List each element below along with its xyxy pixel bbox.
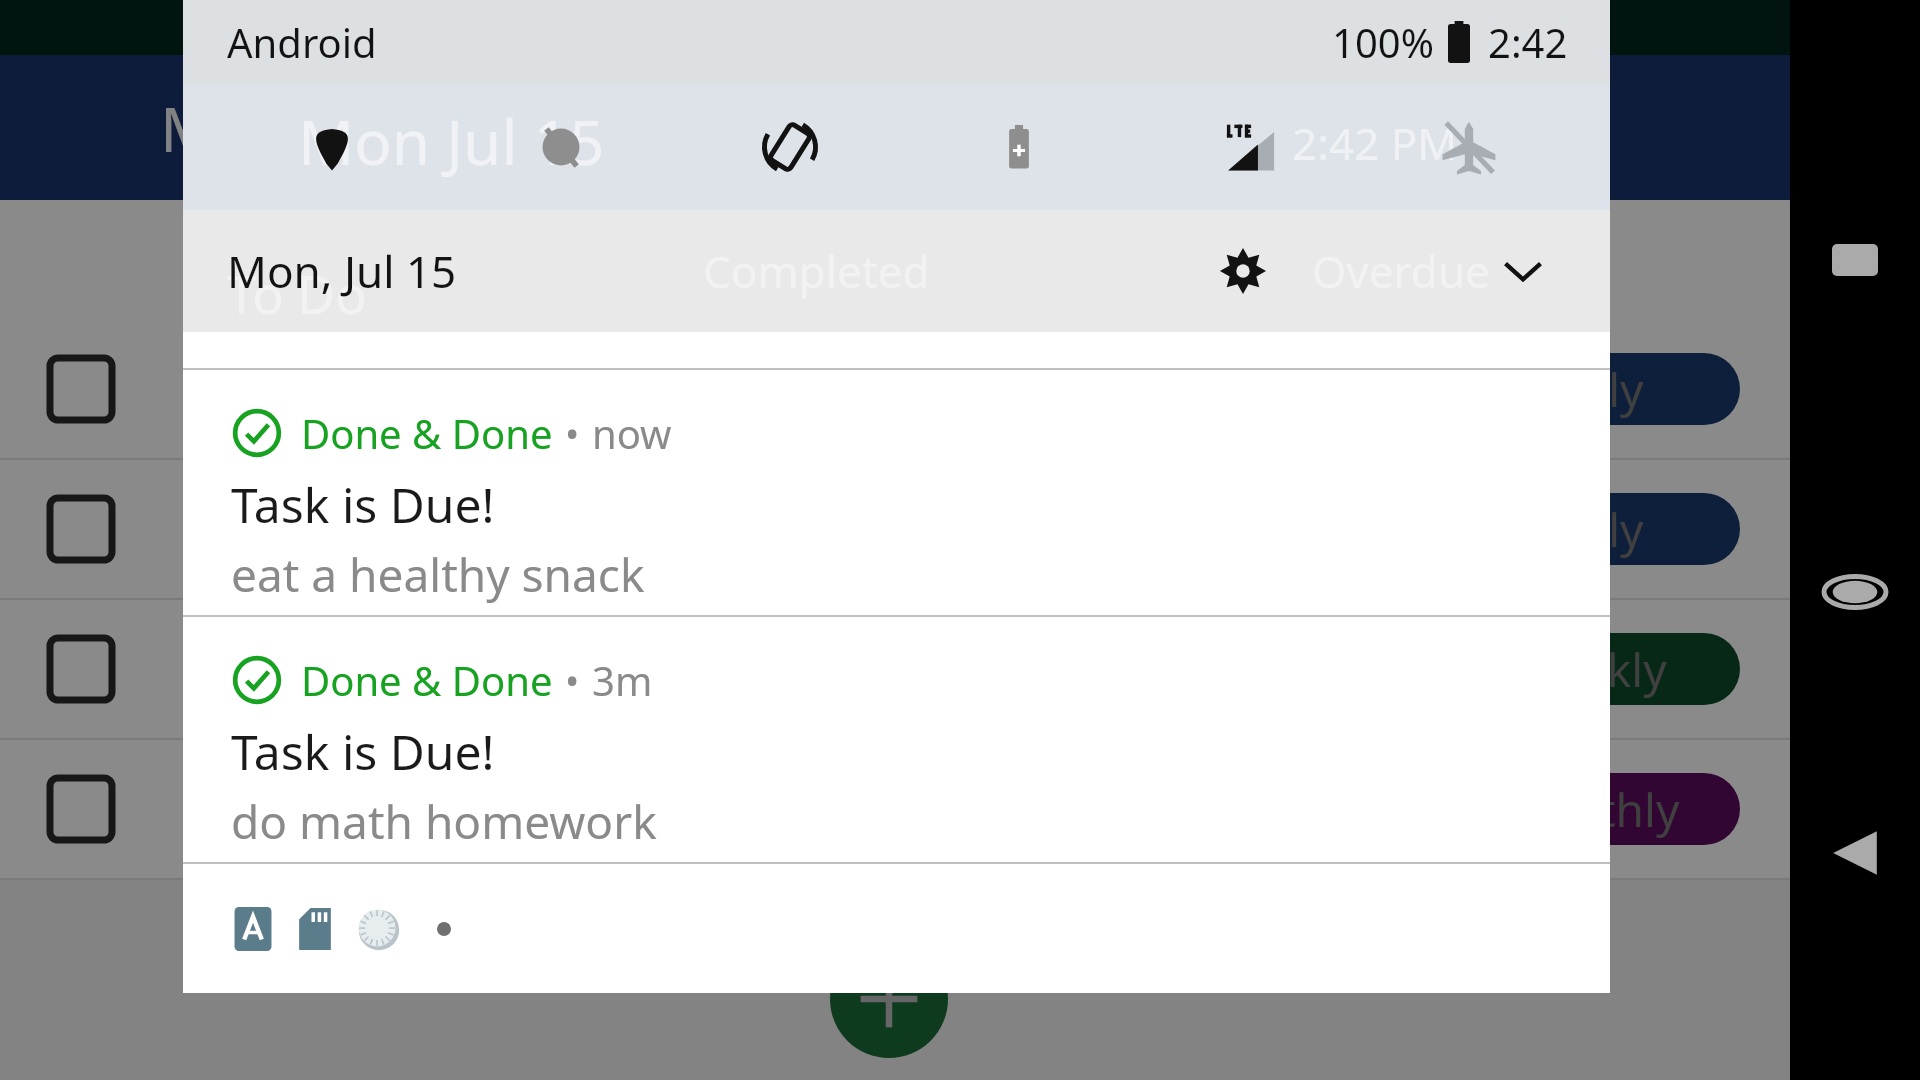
button[interactable]: Settings [1206,234,1280,308]
button[interactable]: Add task [830,940,948,1058]
staticText: do math homework [231,790,657,853]
staticText: Task is Due! [231,719,495,784]
button[interactable] [1362,84,1576,210]
staticText: now [592,406,672,460]
button[interactable]: Daily [0,320,1790,460]
staticText: Monthly [1501,778,1680,841]
staticText: Completed [703,241,930,301]
staticText: Done & Done [301,653,553,707]
staticText: 2:42 PM [1292,113,1458,173]
staticText: 2:42 [1488,15,1568,69]
staticText: Task is Due! [231,472,495,537]
staticText: To Do [30,225,590,296]
button[interactable]: Home [1807,544,1903,640]
button[interactable]: Back [1810,808,1900,898]
staticText: Android [227,15,377,69]
button[interactable] [675,84,904,210]
button[interactable]: Daily [0,460,1790,600]
button[interactable] [1133,84,1362,210]
staticText: 100% [1332,15,1434,69]
button[interactable]: Monthly [0,740,1790,880]
button[interactable] [217,84,446,210]
button[interactable]: Done & Done [183,370,1610,615]
staticText: 2:42 PM [1444,98,1610,158]
staticText: Mon Jul 15 [160,86,467,170]
staticText: • [565,654,580,706]
staticText: Done & Done [301,406,553,460]
staticText: eat a healthy snack [231,543,645,606]
button[interactable]: Done & Done [183,617,1610,862]
button[interactable] [446,84,675,210]
staticText: Overdue [1312,241,1490,301]
other: Done & Done [231,407,283,459]
staticText: Weekly [1513,638,1667,701]
button[interactable] [904,84,1133,210]
staticText: 3m [592,653,653,707]
other: Done & Done [231,654,283,706]
staticText: Daily [1537,498,1644,561]
staticText: To Do [227,258,367,329]
staticText: • [565,407,580,459]
staticText: Mon, Jul 15 [227,241,457,301]
staticText: Mon Jul 15 [298,99,605,183]
button[interactable]: Recent apps [1813,218,1897,302]
button[interactable]: Weekly [0,600,1790,740]
staticText: Daily [1537,358,1644,421]
button[interactable]: Expand quick settings [1486,234,1560,308]
staticText: Overdue [1150,230,1710,290]
